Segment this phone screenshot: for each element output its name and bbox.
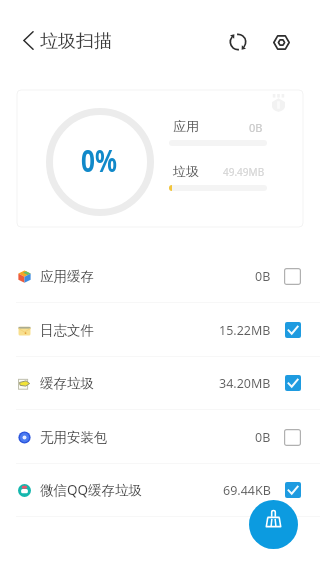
staticText: 垃圾扫描 bbox=[40, 30, 112, 53]
staticText: 缓存垃圾 bbox=[40, 375, 94, 392]
staticText: 应用缓存 bbox=[40, 268, 94, 285]
button[interactable]: Settings bbox=[267, 28, 295, 56]
staticText: 0B bbox=[249, 120, 263, 135]
staticText: 69.44KB bbox=[223, 482, 271, 499]
staticText: 0B bbox=[255, 429, 271, 446]
staticText: 49.49MB bbox=[223, 165, 265, 179]
staticText: 日志文件 bbox=[40, 322, 94, 339]
button[interactable]: 日志文件 bbox=[0, 303, 320, 357]
staticText: 0B bbox=[255, 268, 271, 285]
button[interactable]: Back bbox=[14, 26, 42, 54]
staticText: 垃圾 bbox=[173, 163, 199, 179]
staticText: 无用安装包 bbox=[40, 429, 108, 446]
staticText: 15.22MB bbox=[219, 322, 271, 339]
staticText: 34.20MB bbox=[219, 375, 271, 392]
button[interactable]: 缓存垃圾 bbox=[0, 356, 320, 410]
staticText: 0% bbox=[81, 139, 117, 181]
staticText: 应用 bbox=[173, 118, 199, 134]
button[interactable]: Refresh bbox=[224, 28, 252, 56]
staticText: 微信QQ缓存垃圾 bbox=[40, 481, 143, 499]
button[interactable]: 无用安装包 bbox=[0, 410, 320, 464]
button[interactable]: 应用缓存 bbox=[0, 249, 320, 303]
button[interactable]: 微信QQ缓存垃圾 bbox=[0, 463, 320, 517]
button[interactable]: Clean bbox=[249, 500, 298, 549]
